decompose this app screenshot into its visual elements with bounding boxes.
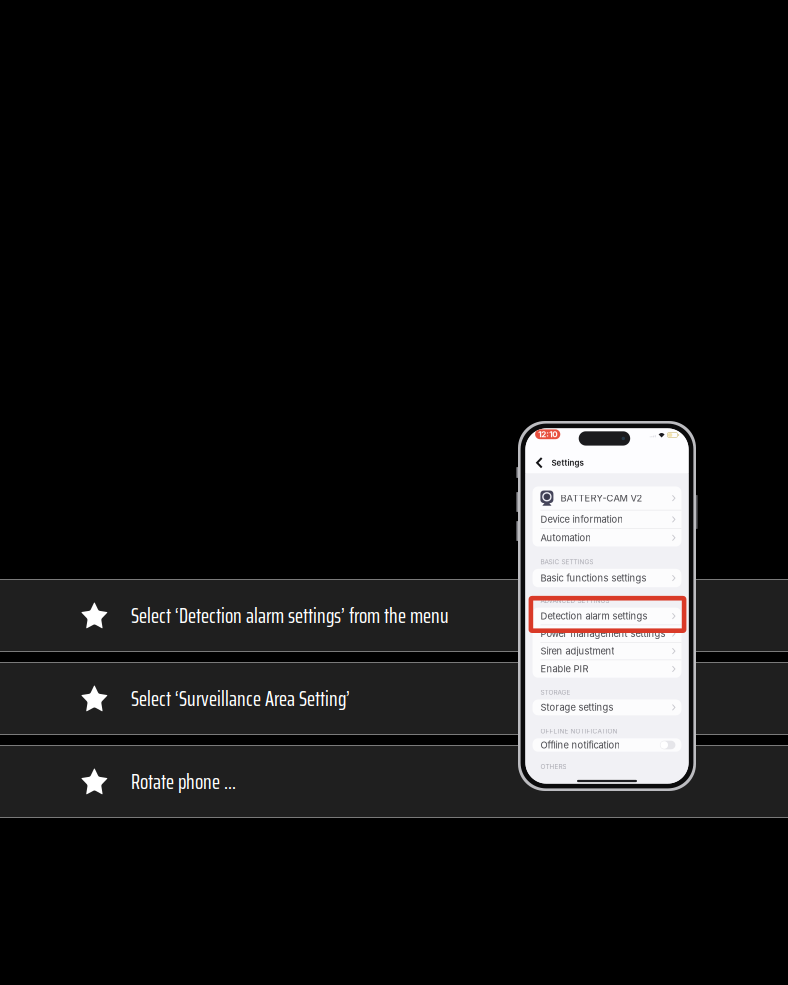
staticText: Select ‘Detection alarm settings’ from t… [131, 599, 449, 632]
button[interactable]: Siren adjustment [533, 643, 681, 660]
button[interactable]: Select ‘Detection alarm settings’ from t… [0, 580, 788, 651]
staticText: Detection alarm settings [540, 610, 647, 622]
staticText: 12:10 [538, 429, 557, 439]
staticText: Enable PIR [540, 663, 588, 675]
button[interactable]: Automation [533, 529, 681, 546]
staticText: Siren adjustment [540, 645, 614, 657]
staticText: Storage settings [540, 702, 613, 713]
button[interactable]: Enable PIR [533, 660, 681, 678]
button[interactable]: Device information [533, 510, 681, 529]
button[interactable]: Rotate phone ... [0, 746, 788, 817]
staticText: OFFLINE NOTIFICATION [540, 727, 617, 735]
staticText: Automation [540, 532, 591, 543]
staticText: Basic functions settings [540, 572, 646, 584]
button[interactable]: Power management settings [533, 625, 681, 643]
staticText: STORAGE [540, 689, 570, 696]
button[interactable]: Detection alarm settings [533, 608, 681, 625]
staticText: ADVANCED SETTINGS [540, 597, 609, 604]
staticText: Power management settings [540, 628, 665, 639]
staticText: Select ‘Surveillance Area Setting’ [131, 682, 350, 715]
staticText: OTHERS [540, 763, 566, 770]
button[interactable]: Storage settings [533, 699, 681, 715]
staticText: BATTERY-CAM V2 [560, 492, 642, 504]
button[interactable]: Basic functions settings [533, 569, 681, 587]
staticText: Settings [552, 458, 584, 468]
staticText: Rotate phone ... [131, 765, 236, 798]
button[interactable]: BATTERY-CAM V2 [533, 486, 681, 510]
button[interactable]: Back [531, 453, 547, 472]
button[interactable]: Offline notification [533, 738, 681, 752]
staticText: Offline notification [540, 739, 620, 751]
button[interactable]: Select ‘Surveillance Area Setting’ [0, 663, 788, 734]
staticText: BASIC SETTINGS [540, 558, 593, 566]
staticText: Device information [540, 514, 623, 525]
